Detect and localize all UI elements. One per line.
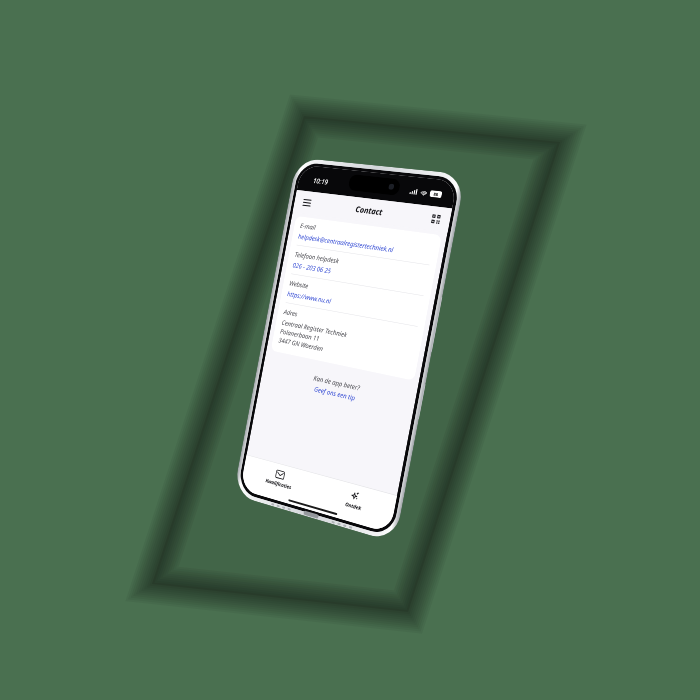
button[interactable]: E-mail [297, 217, 435, 265]
staticText: 88 [433, 191, 439, 197]
staticText: Centraal Register Techniek [281, 318, 348, 339]
staticText: 026 - 203 06 25 [292, 260, 332, 275]
staticText: Adres [283, 307, 298, 318]
staticText: Kwalificaties [265, 477, 292, 491]
staticText: 10:19 [312, 176, 329, 187]
staticText: Kan de app beter? [313, 373, 361, 393]
staticText: Ontdek [345, 500, 362, 512]
button[interactable]: Ontdek [313, 474, 397, 526]
button[interactable]: Website [286, 274, 423, 326]
button[interactable]: Scan QR code [426, 209, 446, 229]
staticText: Polanerbaan 11 [279, 327, 320, 343]
staticText: Contact [355, 203, 384, 218]
button[interactable]: Kan de app beter? [260, 362, 416, 416]
staticText: helpdesk@centraalregistertechniek.nl [297, 232, 394, 254]
staticText: https://www.nu.nl [286, 289, 332, 306]
button[interactable]: Telefoon helpdesk [291, 245, 429, 295]
staticText: E-mail [299, 221, 317, 232]
staticText: Geef ons een tip [313, 384, 356, 403]
staticText: Website [289, 278, 309, 290]
button[interactable]: Kwalificaties [241, 455, 319, 504]
staticText: Telefoon helpdesk [294, 250, 340, 265]
staticText: 3447 GN Woerden [278, 335, 324, 353]
button[interactable]: Menu [298, 194, 316, 212]
